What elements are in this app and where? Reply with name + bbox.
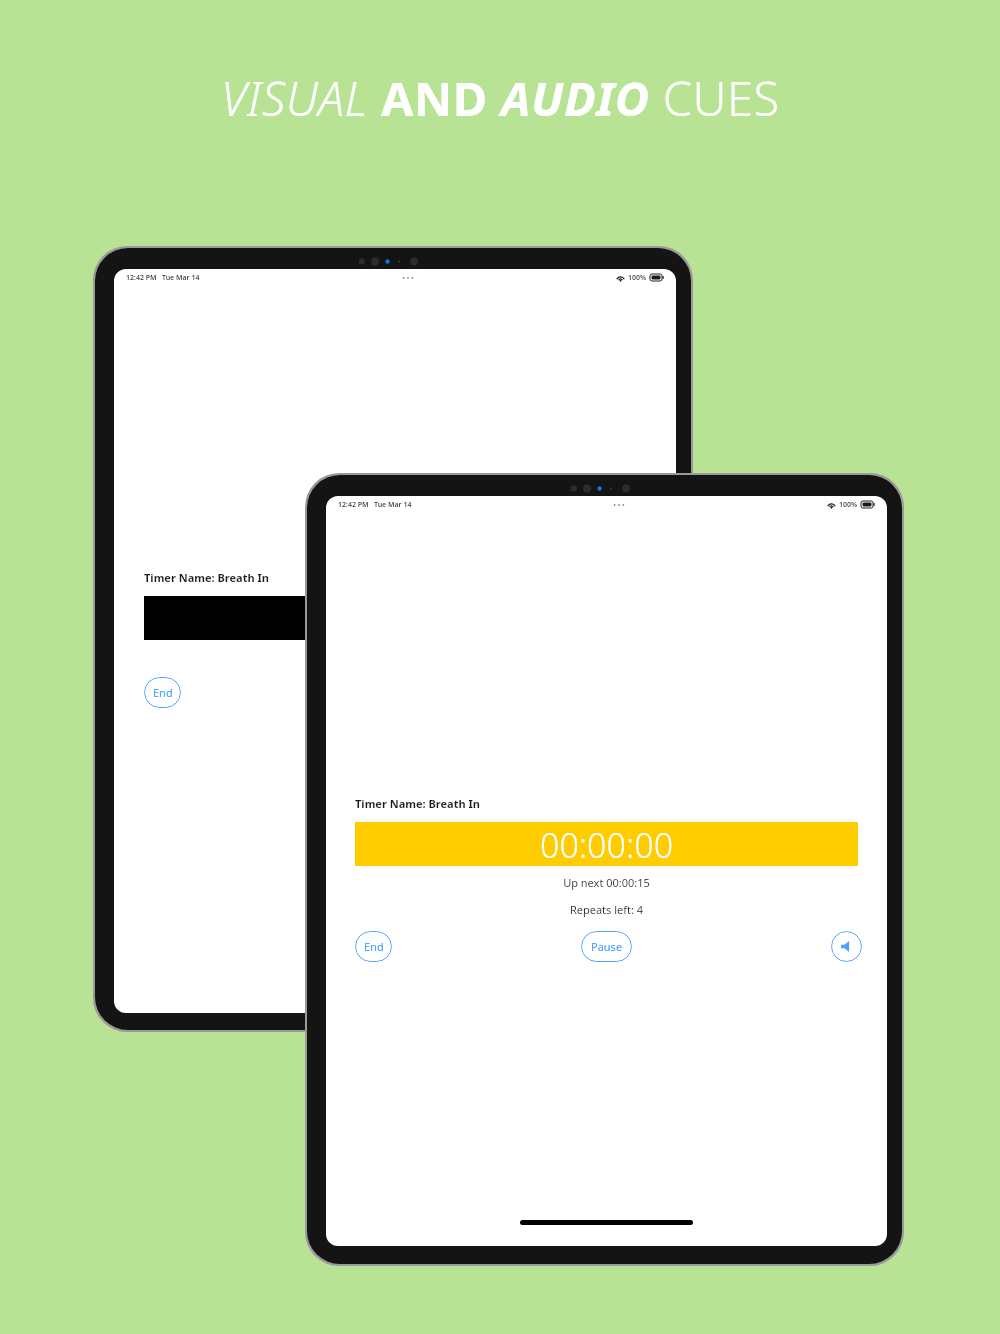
staticText: Pause — [591, 939, 623, 954]
staticText: Up next 00:00:15 — [326, 875, 887, 890]
staticText: Timer Name: Breath In — [355, 796, 480, 811]
staticText: End — [364, 939, 384, 954]
staticText: Timer Name: Breath In — [144, 570, 269, 585]
staticText: Repeats left: 4 — [326, 902, 887, 917]
staticText: AND — [381, 66, 501, 130]
staticText: 100% — [628, 273, 647, 283]
staticText: 00:00:00 — [540, 822, 674, 866]
staticText: CUES — [650, 66, 780, 130]
staticText: End — [153, 685, 173, 700]
button[interactable]: Toggle sound — [831, 931, 862, 962]
staticText: 12:42 PM — [126, 273, 157, 283]
button[interactable]: End — [144, 677, 181, 708]
staticText: AUDIO — [501, 66, 650, 130]
staticText: Tue Mar 14 — [162, 273, 200, 283]
staticText: VISUAL — [221, 66, 381, 130]
staticText: 100% — [839, 500, 858, 510]
button[interactable]: Pause — [581, 931, 632, 962]
button[interactable]: 00:00:00 — [355, 822, 858, 866]
staticText: Tue Mar 14 — [374, 500, 412, 510]
button[interactable]: End — [355, 931, 392, 962]
staticText: 12:42 PM — [338, 500, 369, 510]
